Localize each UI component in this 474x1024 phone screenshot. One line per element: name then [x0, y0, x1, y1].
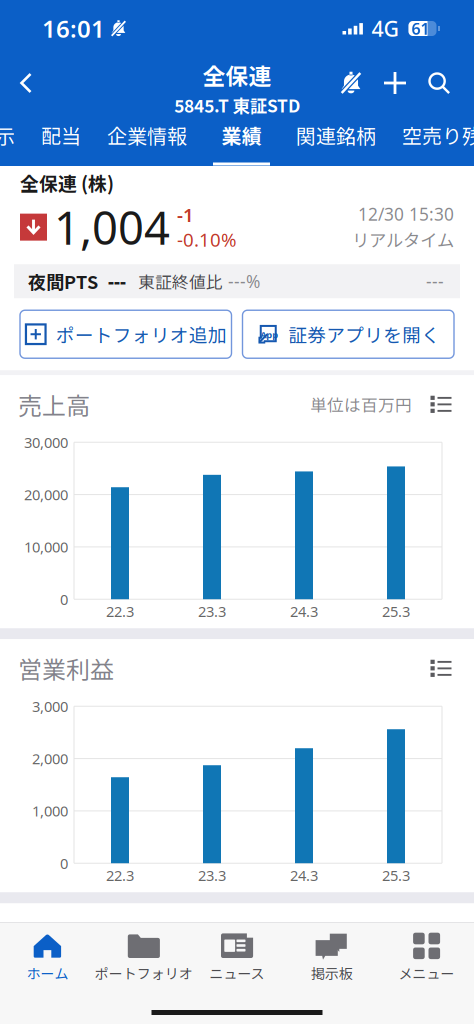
staticText: 単位は百万円: [310, 392, 412, 416]
button[interactable]: Search: [422, 66, 456, 100]
button[interactable]: Show table: [426, 655, 456, 681]
staticText: -1: [177, 202, 194, 227]
staticText: 20,000: [24, 485, 68, 504]
staticText: 証券アプリを開く: [288, 321, 440, 348]
staticText: 23.3: [198, 601, 226, 621]
staticText: 2,000: [32, 749, 68, 768]
staticText: 関連銘柄: [296, 120, 376, 149]
staticText: ---: [426, 270, 444, 293]
staticText: ホーム: [26, 963, 68, 983]
staticText: -0.10%: [177, 227, 237, 252]
staticText: 22.3: [106, 865, 134, 885]
staticText: 0: [60, 853, 68, 873]
staticText: 全保連: [202, 58, 271, 91]
staticText: 企業情報: [107, 120, 187, 149]
button[interactable]: Show table: [426, 391, 456, 417]
button[interactable]: 企業情報: [94, 109, 200, 165]
staticText: 全保連 (株): [20, 169, 114, 196]
button[interactable]: 空売り残: [389, 109, 474, 165]
button[interactable]: ホーム: [0, 923, 95, 983]
button[interactable]: 配当: [28, 109, 94, 165]
button[interactable]: Back: [8, 63, 44, 103]
staticText: App: [260, 328, 278, 341]
staticText: リアルタイム: [352, 227, 454, 252]
staticText: 61: [411, 18, 429, 39]
staticText: 12/30 15:30: [358, 203, 454, 226]
staticText: 夜間PTS: [28, 268, 98, 294]
staticText: 5845.T 東証STD: [174, 92, 300, 117]
staticText: 空売り残: [402, 120, 474, 149]
staticText: 16:01: [42, 13, 105, 44]
staticText: 1,004: [54, 197, 170, 257]
staticText: ポートフォリオ追加: [56, 321, 227, 348]
button[interactable]: 業績: [200, 109, 283, 165]
button[interactable]: App: [242, 310, 454, 358]
staticText: 22.3: [106, 601, 134, 621]
staticText: 示: [0, 120, 15, 149]
staticText: 4G: [371, 14, 399, 43]
staticText: 東証終値比: [138, 269, 223, 293]
staticText: 業績: [221, 120, 261, 149]
staticText: 25.3: [382, 865, 410, 885]
staticText: 10,000: [24, 537, 68, 557]
staticText: 23.3: [198, 865, 226, 885]
staticText: ポートフォリオ: [95, 963, 193, 983]
button[interactable]: 関連銘柄: [283, 109, 389, 165]
button[interactable]: ポートフォリオ追加: [20, 310, 231, 358]
staticText: ニュース: [209, 963, 264, 983]
staticText: 売上高: [18, 387, 90, 422]
staticText: 掲示板: [311, 963, 353, 983]
staticText: 3,000: [32, 696, 68, 716]
staticText: 24.3: [290, 601, 318, 621]
staticText: ---: [108, 269, 126, 294]
staticText: 30,000: [24, 432, 68, 452]
staticText: 営業利益: [18, 651, 114, 686]
button[interactable]: ポートフォリオ: [95, 923, 190, 983]
button[interactable]: Add: [378, 66, 412, 100]
button[interactable]: 示: [0, 109, 28, 165]
button[interactable]: ニュース: [190, 923, 284, 983]
button[interactable]: 掲示板: [284, 923, 379, 983]
staticText: メニュー: [399, 963, 455, 983]
staticText: 0: [60, 589, 68, 609]
button[interactable]: Notifications: [334, 66, 368, 100]
staticText: 25.3: [382, 601, 410, 621]
staticText: ---%: [228, 270, 260, 293]
staticText: 1,000: [32, 801, 68, 821]
button[interactable]: メニュー: [379, 923, 474, 983]
staticText: 配当: [41, 120, 81, 149]
staticText: 24.3: [290, 865, 318, 885]
